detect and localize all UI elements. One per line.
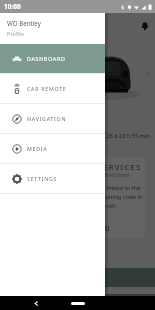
staticText: DASHBOARD bbox=[27, 55, 66, 62]
other: Back bbox=[33, 300, 40, 307]
button[interactable]: NAVIGATION bbox=[0, 104, 105, 133]
button[interactable]: DASHBOARD bbox=[0, 44, 105, 73]
button[interactable]: Unlock car bbox=[0, 268, 155, 287]
staticText: 10:00 bbox=[4, 2, 21, 11]
other: Next vehicle bbox=[144, 70, 151, 77]
staticText: CAR REMOTE bbox=[27, 85, 67, 92]
staticText: SERVICES bbox=[98, 162, 142, 172]
staticText: Remote functions bbox=[83, 171, 130, 179]
staticText: Your car is not linked to the bbox=[66, 184, 141, 192]
button[interactable]: MEDIA bbox=[0, 134, 105, 163]
staticText: WO Bentley bbox=[7, 19, 41, 27]
staticText: 0 bbox=[105, 223, 110, 233]
staticText: service. Enter pairing code in bbox=[64, 193, 143, 201]
button[interactable]: CAR REMOTE bbox=[0, 74, 105, 103]
staticText: SETTINGS bbox=[27, 175, 58, 182]
staticText: Profile bbox=[7, 30, 24, 38]
staticText: this month: bbox=[86, 202, 118, 210]
button[interactable]: SERVICES bbox=[8, 157, 145, 238]
staticText: MEDIA bbox=[27, 145, 48, 152]
staticText: 126 d 22 h 55 min bbox=[103, 132, 150, 140]
button[interactable]: SETTINGS bbox=[0, 164, 105, 193]
staticText: NAVIGATION bbox=[27, 115, 67, 122]
other: Notifications bbox=[141, 22, 149, 30]
